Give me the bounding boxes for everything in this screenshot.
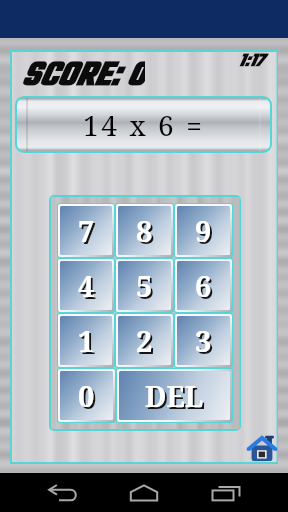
button[interactable]: 6 xyxy=(177,261,230,310)
button[interactable]: Recent apps xyxy=(206,473,246,512)
staticText: DEL xyxy=(145,377,204,415)
staticText: 14 x 6 = xyxy=(83,106,205,144)
staticText: 0 xyxy=(78,376,95,415)
button[interactable]: 2 xyxy=(118,316,171,365)
staticText: 2 xyxy=(138,323,155,362)
staticText: 0 xyxy=(80,378,97,417)
staticText: 3 xyxy=(195,321,212,360)
staticText: 1:17 xyxy=(238,48,264,75)
staticText: 3 xyxy=(197,323,214,362)
button[interactable]: 7 xyxy=(60,206,112,255)
button[interactable]: 3 xyxy=(177,316,230,365)
staticText: 4 xyxy=(78,266,95,305)
staticText: 6 xyxy=(197,268,214,307)
staticText: 6 xyxy=(195,266,212,305)
button[interactable]: 8 xyxy=(118,206,171,255)
button[interactable]: 5 xyxy=(118,261,171,310)
button[interactable]: 4 xyxy=(60,261,112,310)
button[interactable]: Home xyxy=(246,433,278,464)
staticText: 5 xyxy=(136,266,153,305)
staticText: 7 xyxy=(80,213,97,252)
staticText: 7 xyxy=(78,211,95,250)
staticText: SCORE: 0 xyxy=(21,51,145,95)
staticText: 2 xyxy=(136,321,153,360)
staticText: 9 xyxy=(195,211,212,250)
button[interactable]: 0 xyxy=(60,371,113,420)
button[interactable]: 9 xyxy=(177,206,230,255)
button[interactable]: 1 xyxy=(60,316,112,365)
staticText: DEL xyxy=(147,379,206,417)
staticText: 9 xyxy=(197,213,214,252)
staticText: 4 xyxy=(80,268,97,307)
staticText: 5 xyxy=(138,268,155,307)
staticText: 1 xyxy=(80,323,97,362)
button[interactable]: Back xyxy=(42,473,82,512)
button[interactable]: Home xyxy=(124,473,164,512)
button[interactable]: DEL xyxy=(119,371,230,420)
staticText: 8 xyxy=(138,213,155,252)
staticText: 1 xyxy=(78,321,95,360)
button[interactable]: 14 x 6 = xyxy=(17,98,270,151)
staticText: 8 xyxy=(136,211,153,250)
